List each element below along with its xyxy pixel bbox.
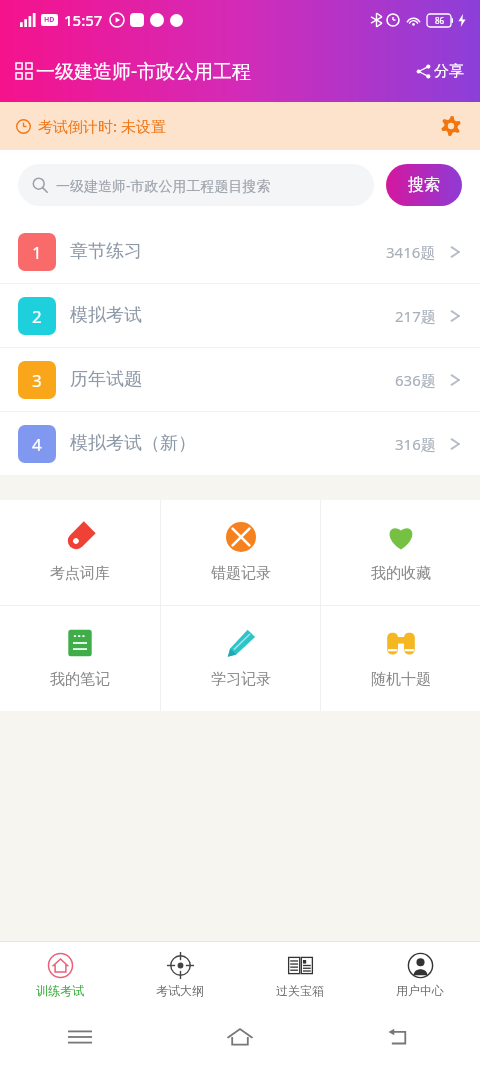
button[interactable]: 考试倒计时: 未设置 <box>0 102 480 150</box>
button[interactable]: 1 <box>0 220 480 283</box>
staticText: 模拟考试（新） <box>70 432 196 455</box>
button[interactable]: 我的收藏 <box>321 500 480 605</box>
staticText: 搜索 <box>408 175 440 195</box>
staticText: 636题 <box>395 370 436 390</box>
staticText: 学习记录 <box>211 670 271 689</box>
staticText: 随机十题 <box>371 670 431 689</box>
button[interactable]: 我的笔记 <box>0 606 160 711</box>
staticText: 4 <box>32 433 42 456</box>
button[interactable]: 考试大纲 <box>120 942 240 1008</box>
button[interactable]: 随机十题 <box>321 606 480 711</box>
button[interactable]: 搜索 <box>386 164 462 206</box>
button[interactable]: 训练考试 <box>0 942 120 1008</box>
button[interactable]: 学习记录 <box>161 606 320 711</box>
staticText: 3 <box>32 369 42 392</box>
staticText: 历年试题 <box>70 368 142 391</box>
button[interactable]: 考点词库 <box>0 500 160 605</box>
button[interactable]: 设置倒计时 <box>436 111 466 141</box>
staticText: 2 <box>32 305 42 328</box>
button[interactable]: 过关宝箱 <box>240 942 360 1008</box>
staticText: 章节练习 <box>70 240 142 263</box>
staticText: 分享 <box>434 62 464 81</box>
staticText: 86 <box>435 15 445 26</box>
button[interactable]: 2 <box>0 284 480 347</box>
button[interactable]: 4 <box>0 412 480 475</box>
staticText: 过关宝箱 <box>276 983 324 998</box>
staticText: 我的收藏 <box>371 564 431 583</box>
staticText: 316题 <box>395 434 436 454</box>
button[interactable]: 分享 <box>414 56 466 87</box>
staticText: 一级建造师-市政公用工程 <box>36 58 252 84</box>
button[interactable]: 错题记录 <box>161 500 320 605</box>
button[interactable]: 主页 <box>160 1008 320 1066</box>
button[interactable]: 返回 <box>320 1008 480 1066</box>
button[interactable]: 3 <box>0 348 480 411</box>
staticText: 3416题 <box>386 242 436 262</box>
staticText: 考试倒计时: 未设置 <box>38 116 166 136</box>
button[interactable]: 一级建造师-市政公用工程 <box>16 58 252 84</box>
staticText: 训练考试 <box>36 983 84 998</box>
staticText: 错题记录 <box>211 564 271 583</box>
staticText: 考试大纲 <box>156 983 204 998</box>
staticText: 我的笔记 <box>50 670 110 689</box>
button[interactable]: 一级建造师-市政公用工程题目搜索 <box>18 164 374 206</box>
staticText: 考点词库 <box>50 564 110 583</box>
staticText: 1 <box>32 241 42 264</box>
staticText: 用户中心 <box>396 983 444 998</box>
staticText: 一级建造师-市政公用工程题目搜索 <box>56 176 271 195</box>
staticText: HD <box>44 15 55 25</box>
button[interactable]: 用户中心 <box>360 942 480 1008</box>
staticText: 15:57 <box>64 10 103 30</box>
staticText: 模拟考试 <box>70 304 142 327</box>
button[interactable]: 最近任务 <box>0 1008 160 1066</box>
staticText: 217题 <box>395 306 436 326</box>
